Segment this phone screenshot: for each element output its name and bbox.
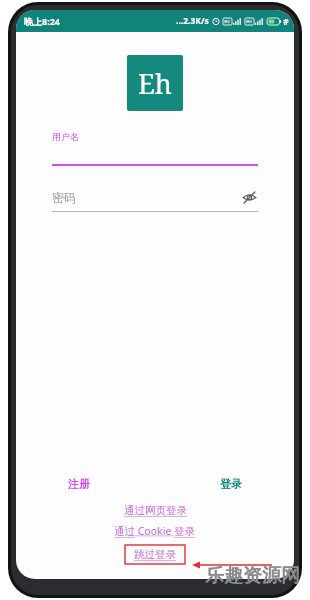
staticText: 注册 bbox=[68, 477, 90, 491]
button[interactable]: 通过网页登录 bbox=[118, 503, 193, 518]
staticText: 通过网页登录 bbox=[124, 504, 187, 517]
button[interactable]: 跳过登录 bbox=[123, 544, 187, 565]
staticText: 乐趣资源网 bbox=[205, 564, 300, 588]
button[interactable]: Show password bbox=[240, 188, 258, 206]
staticText: 晚上8:24 bbox=[24, 15, 60, 27]
button[interactable]: 登录 bbox=[216, 473, 246, 495]
button[interactable]: 密码 bbox=[52, 188, 258, 212]
staticText: 跳过登录 bbox=[134, 548, 176, 561]
staticText: 通过 Cookie 登录 bbox=[114, 524, 196, 538]
button[interactable]: 通过 Cookie 登录 bbox=[108, 523, 202, 539]
button[interactable]: 注册 bbox=[64, 473, 94, 495]
staticText: 密码 bbox=[52, 190, 240, 205]
staticText: # bbox=[283, 15, 289, 27]
staticText: Eh bbox=[138, 65, 172, 102]
staticText: 登录 bbox=[220, 477, 242, 491]
staticText: ...2.3K/s bbox=[176, 15, 209, 27]
button[interactable]: 用户名 bbox=[52, 131, 258, 166]
staticText: 用户名 bbox=[52, 131, 79, 142]
